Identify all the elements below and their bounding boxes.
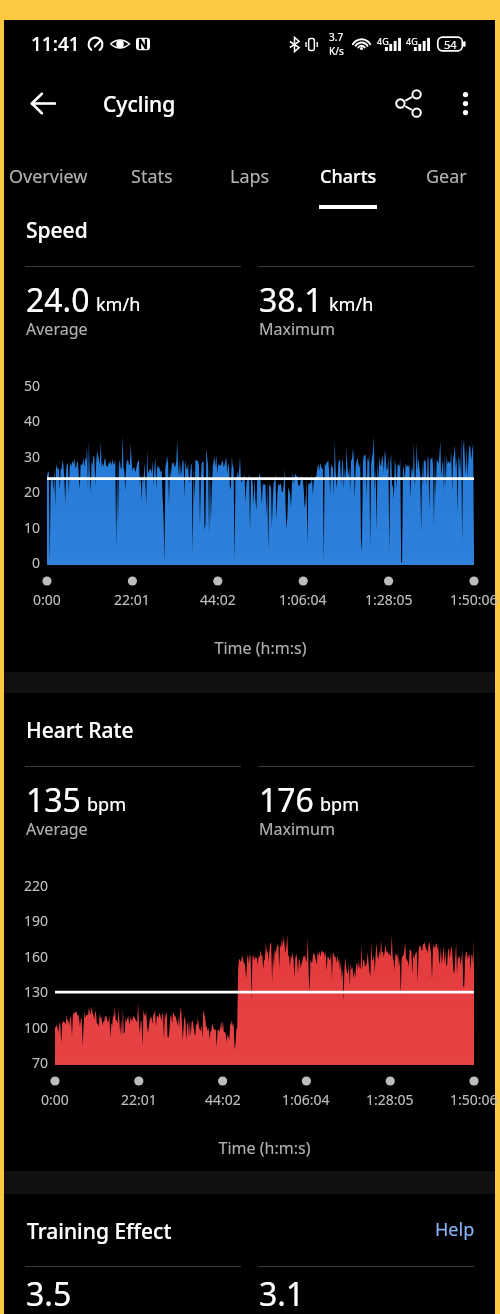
staticText: Charts <box>320 164 377 189</box>
staticText: 44:02 <box>205 1090 241 1109</box>
staticText: Gear <box>426 164 467 189</box>
staticText: 50 <box>24 376 41 395</box>
staticText: 40 <box>24 411 41 430</box>
staticText: Maximum <box>259 818 335 840</box>
staticText: 190 <box>24 911 49 930</box>
staticText: Overview <box>9 164 88 189</box>
staticText: km/h <box>329 292 374 317</box>
staticText: bpm <box>320 792 359 817</box>
staticText: Average <box>26 818 88 840</box>
staticText: 3.7 <box>329 30 344 44</box>
staticText: 1:28:05 <box>365 590 413 609</box>
staticText: 10 <box>24 518 41 537</box>
staticText: 130 <box>24 982 49 1001</box>
button[interactable]: Charts <box>299 130 397 214</box>
staticText: Stats <box>131 164 173 189</box>
staticText: 4G <box>377 35 389 47</box>
staticText: 160 <box>24 947 49 966</box>
staticText: Speed <box>26 216 88 245</box>
staticText: bpm <box>87 792 126 817</box>
staticText: 1:28:05 <box>366 1090 414 1109</box>
button[interactable]: More options <box>441 79 489 127</box>
staticText: Maximum <box>259 318 335 340</box>
staticText: 24.0 <box>26 278 90 322</box>
staticText: Average <box>26 318 88 340</box>
button[interactable]: Gear <box>397 130 495 214</box>
staticText: 100 <box>24 1018 49 1037</box>
staticText: 220 <box>24 876 49 895</box>
staticText: 30 <box>24 447 41 466</box>
staticText: Heart Rate <box>26 716 134 745</box>
staticText: 44:02 <box>200 590 236 609</box>
staticText: 176 <box>259 778 314 822</box>
staticText: Cycling <box>103 90 176 119</box>
staticText: 54 <box>444 37 457 52</box>
staticText: 1:50:06 <box>450 1090 498 1109</box>
staticText: 3.1 <box>259 1272 305 1314</box>
staticText: 3.5 <box>26 1272 72 1314</box>
button[interactable]: Stats <box>103 130 201 214</box>
staticText: 135 <box>26 778 81 822</box>
staticText: 20 <box>24 482 41 501</box>
staticText: 0 <box>32 553 41 572</box>
staticText: Time (h:m:s) <box>47 637 474 659</box>
staticText: 1:06:04 <box>282 1090 330 1109</box>
staticText: 1:50:06 <box>450 590 498 609</box>
staticText: 11:41 <box>31 31 80 57</box>
staticText: 22:01 <box>114 590 150 609</box>
staticText: 70 <box>32 1053 49 1072</box>
staticText: 22:01 <box>121 1090 157 1109</box>
staticText: 0:00 <box>41 1090 69 1109</box>
button[interactable]: Laps <box>201 130 299 214</box>
staticText: 38.1 <box>259 278 323 322</box>
button[interactable]: Overview <box>4 130 103 214</box>
staticText: Laps <box>230 164 270 189</box>
button[interactable]: Share <box>384 79 432 127</box>
button[interactable]: Back <box>17 77 69 129</box>
button[interactable]: Help <box>435 1217 475 1242</box>
staticText: 0:00 <box>33 590 61 609</box>
staticText: Time (h:m:s) <box>55 1137 474 1159</box>
staticText: K/s <box>329 44 344 58</box>
staticText: Training Effect <box>27 1217 172 1246</box>
staticText: 4G <box>406 35 418 47</box>
staticText: Help <box>435 1217 475 1242</box>
staticText: km/h <box>96 292 141 317</box>
staticText: 1:06:04 <box>279 590 327 609</box>
